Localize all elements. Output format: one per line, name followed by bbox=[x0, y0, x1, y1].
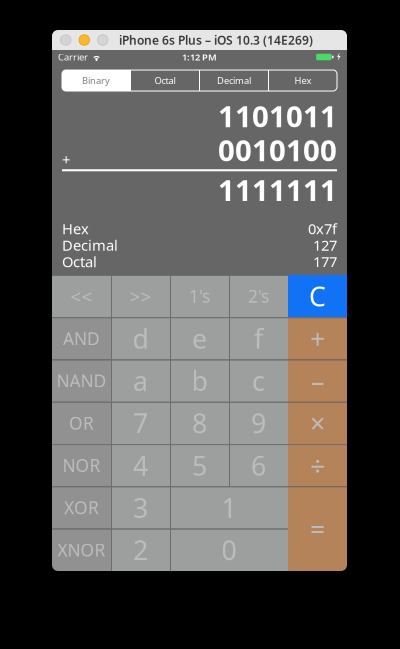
button[interactable]: b bbox=[170, 360, 229, 402]
staticText: XOR bbox=[64, 496, 99, 519]
button[interactable]: XOR bbox=[52, 486, 111, 529]
button[interactable]: 1's bbox=[170, 275, 229, 317]
staticText: 7 bbox=[133, 405, 148, 441]
button[interactable]: × bbox=[288, 402, 347, 444]
staticText: Decimal bbox=[62, 235, 118, 255]
staticText: NAND bbox=[56, 369, 106, 392]
staticText: 0x7f bbox=[308, 219, 337, 238]
button[interactable]: C bbox=[288, 275, 347, 317]
staticText: f bbox=[254, 321, 263, 356]
staticText: ÷ bbox=[310, 448, 325, 483]
button[interactable]: 1 bbox=[170, 486, 288, 529]
staticText: e bbox=[192, 321, 207, 356]
button[interactable]: a bbox=[111, 360, 170, 402]
button[interactable]: f bbox=[229, 317, 288, 360]
staticText: × bbox=[310, 405, 325, 441]
staticText: Binary bbox=[82, 74, 110, 87]
button[interactable]: ÷ bbox=[288, 444, 347, 486]
staticText: 1101011 bbox=[218, 96, 337, 135]
staticText: 6 bbox=[251, 448, 266, 483]
button[interactable]: Octal bbox=[131, 70, 199, 91]
button[interactable]: NAND bbox=[52, 360, 111, 402]
button[interactable]: Decimal bbox=[200, 70, 268, 91]
staticText: 177 bbox=[313, 252, 337, 271]
staticText: Hex bbox=[62, 219, 89, 238]
button[interactable]: c bbox=[229, 360, 288, 402]
staticText: 2 bbox=[133, 532, 148, 568]
staticText: c bbox=[252, 363, 265, 398]
staticText: Hex bbox=[294, 74, 311, 87]
staticText: Decimal bbox=[217, 74, 251, 87]
button[interactable]: >> bbox=[111, 275, 170, 317]
staticText: 1:12 PM bbox=[182, 51, 217, 63]
staticText: Carrier bbox=[58, 51, 88, 63]
button[interactable]: 0 bbox=[170, 529, 288, 571]
staticText: + bbox=[62, 150, 70, 169]
button[interactable]: 2's bbox=[229, 275, 288, 317]
staticText: 127 bbox=[313, 235, 337, 255]
button[interactable]: – bbox=[288, 360, 347, 402]
button[interactable]: 8 bbox=[170, 402, 229, 444]
button[interactable]: 6 bbox=[229, 444, 288, 486]
button[interactable]: Hex bbox=[269, 70, 337, 91]
button[interactable]: NOR bbox=[52, 444, 111, 486]
staticText: Octal bbox=[62, 252, 97, 271]
button[interactable]: Binary bbox=[62, 70, 130, 91]
staticText: 5 bbox=[192, 448, 207, 483]
button[interactable]: << bbox=[52, 275, 111, 317]
staticText: NOR bbox=[62, 454, 100, 477]
staticText: XNOR bbox=[57, 538, 105, 561]
staticText: 1's bbox=[189, 285, 210, 308]
staticText: 2's bbox=[248, 285, 269, 308]
button[interactable]: + bbox=[288, 317, 347, 360]
button[interactable]: 3 bbox=[111, 486, 170, 529]
staticText: d bbox=[132, 321, 148, 356]
staticText: 1 bbox=[221, 490, 236, 525]
button[interactable]: 9 bbox=[229, 402, 288, 444]
button[interactable]: AND bbox=[52, 317, 111, 360]
button[interactable]: d bbox=[111, 317, 170, 360]
button[interactable]: e bbox=[170, 317, 229, 360]
staticText: << bbox=[70, 284, 92, 308]
staticText: + bbox=[310, 321, 325, 356]
button[interactable]: OR bbox=[52, 402, 111, 444]
staticText: – bbox=[311, 363, 324, 398]
staticText: OR bbox=[69, 411, 94, 434]
button[interactable]: = bbox=[288, 486, 347, 571]
staticText: 8 bbox=[192, 405, 207, 441]
staticText: 9 bbox=[251, 405, 266, 441]
button[interactable]: 4 bbox=[111, 444, 170, 486]
button[interactable]: 7 bbox=[111, 402, 170, 444]
staticText: C bbox=[309, 278, 326, 314]
button[interactable]: 5 bbox=[170, 444, 229, 486]
staticText: 4 bbox=[133, 448, 148, 483]
staticText: Octal bbox=[154, 74, 175, 87]
staticText: = bbox=[310, 511, 325, 546]
staticText: AND bbox=[63, 327, 100, 350]
staticText: b bbox=[191, 363, 207, 398]
staticText: 0 bbox=[221, 532, 236, 568]
staticText: 3 bbox=[133, 490, 148, 525]
staticText: >> bbox=[129, 284, 151, 308]
staticText: a bbox=[133, 363, 148, 398]
staticText: iPhone 6s Plus – iOS 10.3 (14E269) bbox=[119, 32, 313, 48]
button[interactable]: 2 bbox=[111, 529, 170, 571]
button[interactable]: XNOR bbox=[52, 529, 111, 571]
staticText: 0010100 bbox=[218, 130, 337, 169]
staticText: 1111111 bbox=[218, 170, 337, 209]
